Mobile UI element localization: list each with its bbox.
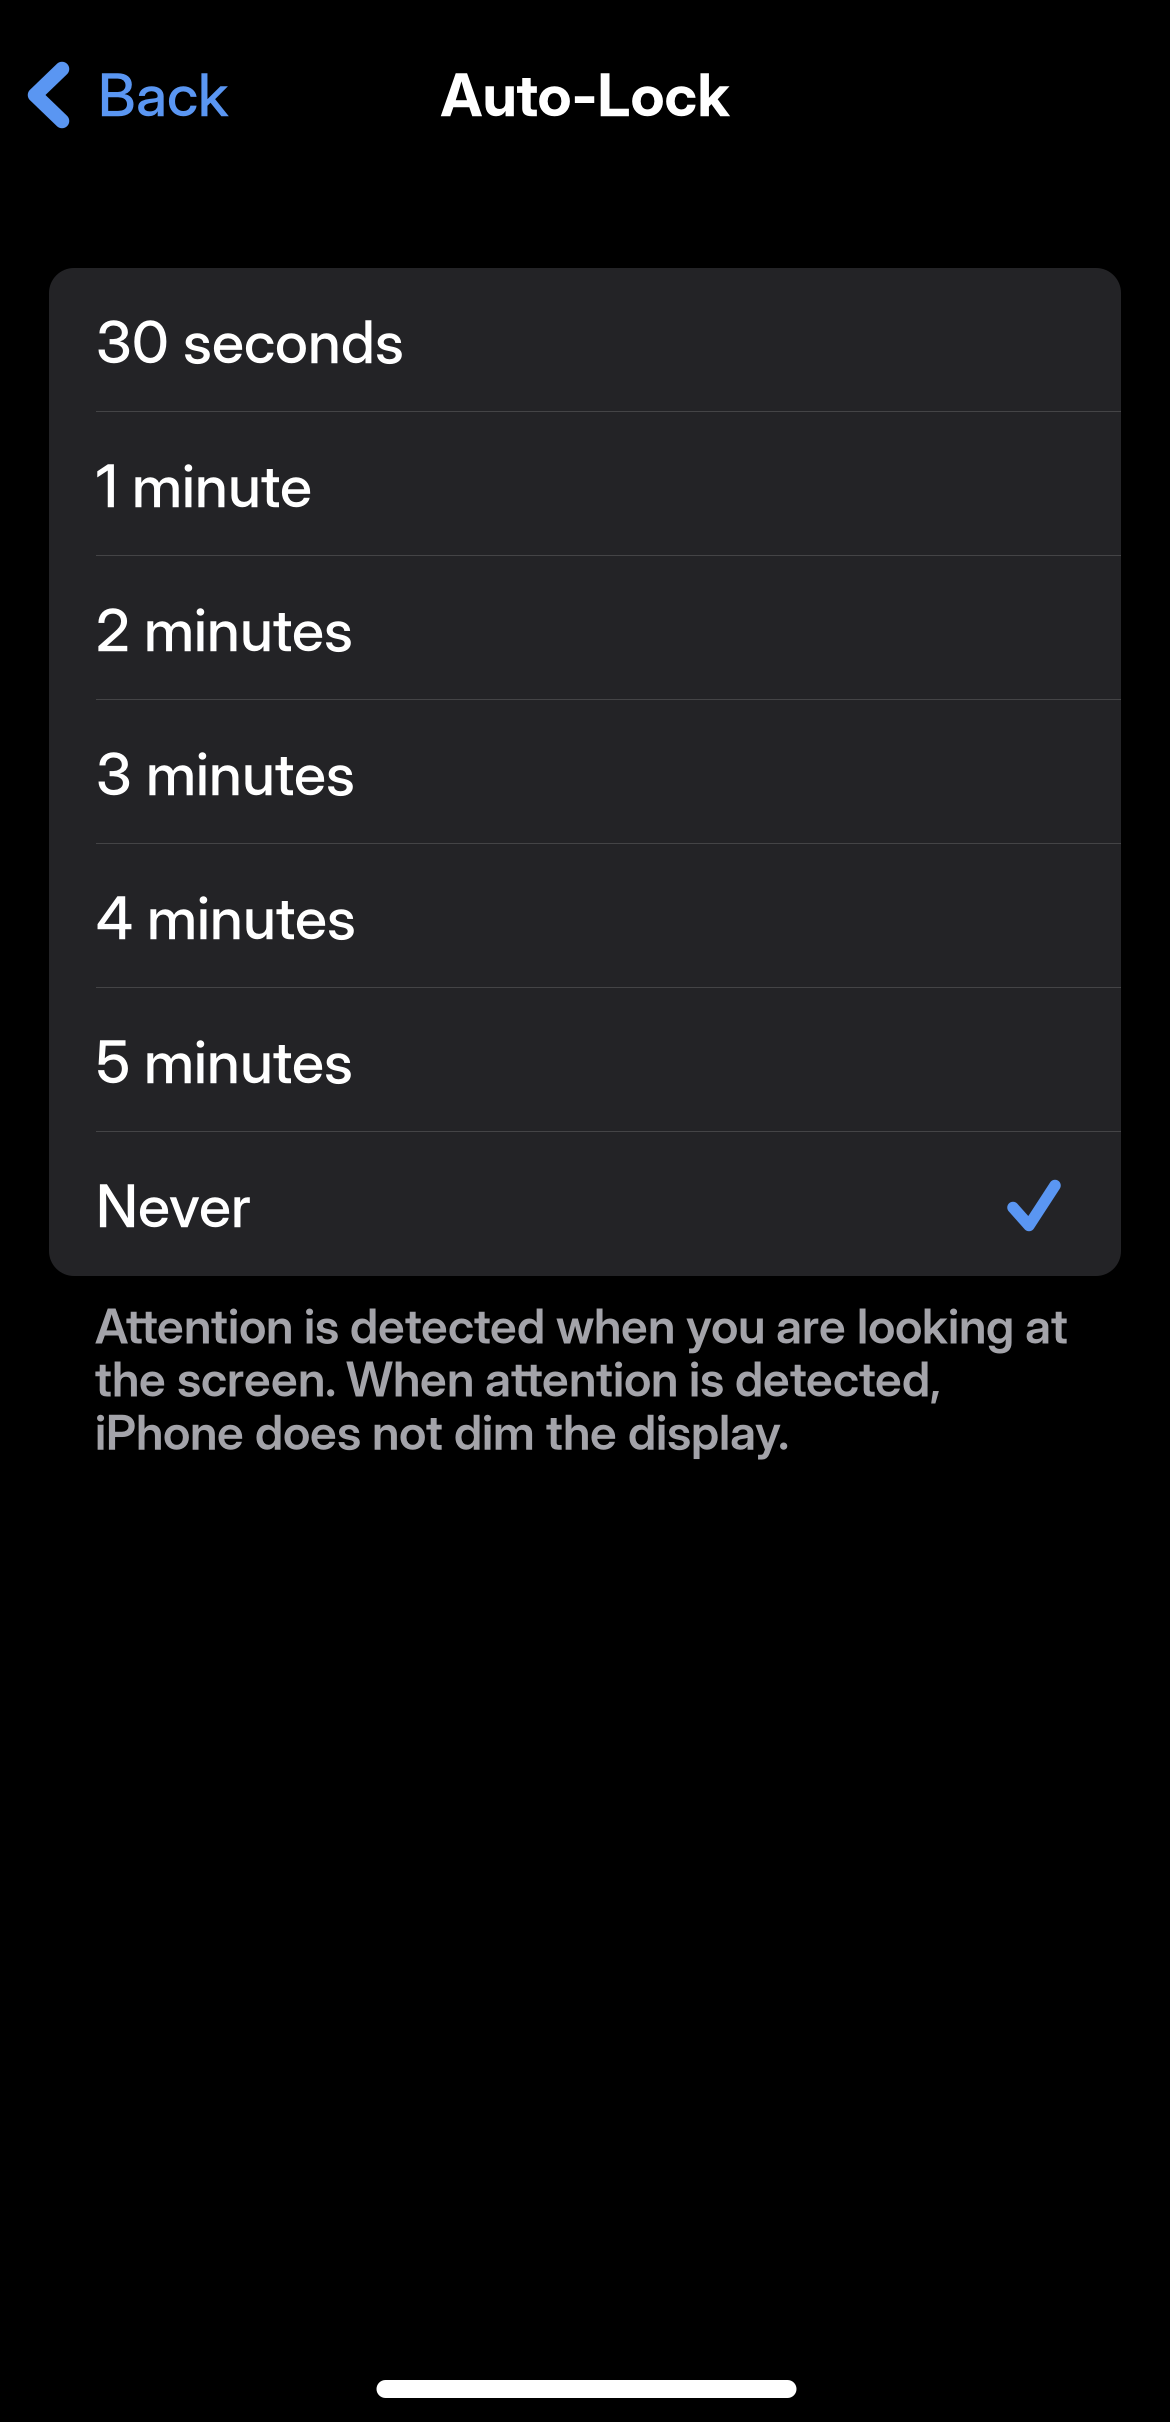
staticText: 30 seconds: [96, 306, 404, 377]
staticText: 4 minutes: [96, 882, 356, 953]
staticText: Auto-Lock: [440, 59, 729, 130]
button[interactable]: Never: [49, 1132, 1121, 1276]
staticText: 1 minute: [96, 450, 312, 521]
staticText: 2 minutes: [96, 594, 353, 665]
staticText: Attention is detected when you are looki…: [95, 1297, 1068, 1461]
button[interactable]: 2 minutes: [49, 556, 1121, 700]
staticText: Back: [98, 59, 229, 130]
button[interactable]: 3 minutes: [49, 700, 1121, 844]
button[interactable]: 4 minutes: [49, 844, 1121, 988]
staticText: Never: [96, 1170, 251, 1241]
button[interactable]: 30 seconds: [49, 268, 1121, 412]
button[interactable]: 1 minute: [49, 412, 1121, 556]
button[interactable]: Back: [0, 28, 253, 162]
button[interactable]: 5 minutes: [49, 988, 1121, 1132]
staticText: 3 minutes: [96, 738, 355, 809]
staticText: 5 minutes: [96, 1026, 353, 1097]
